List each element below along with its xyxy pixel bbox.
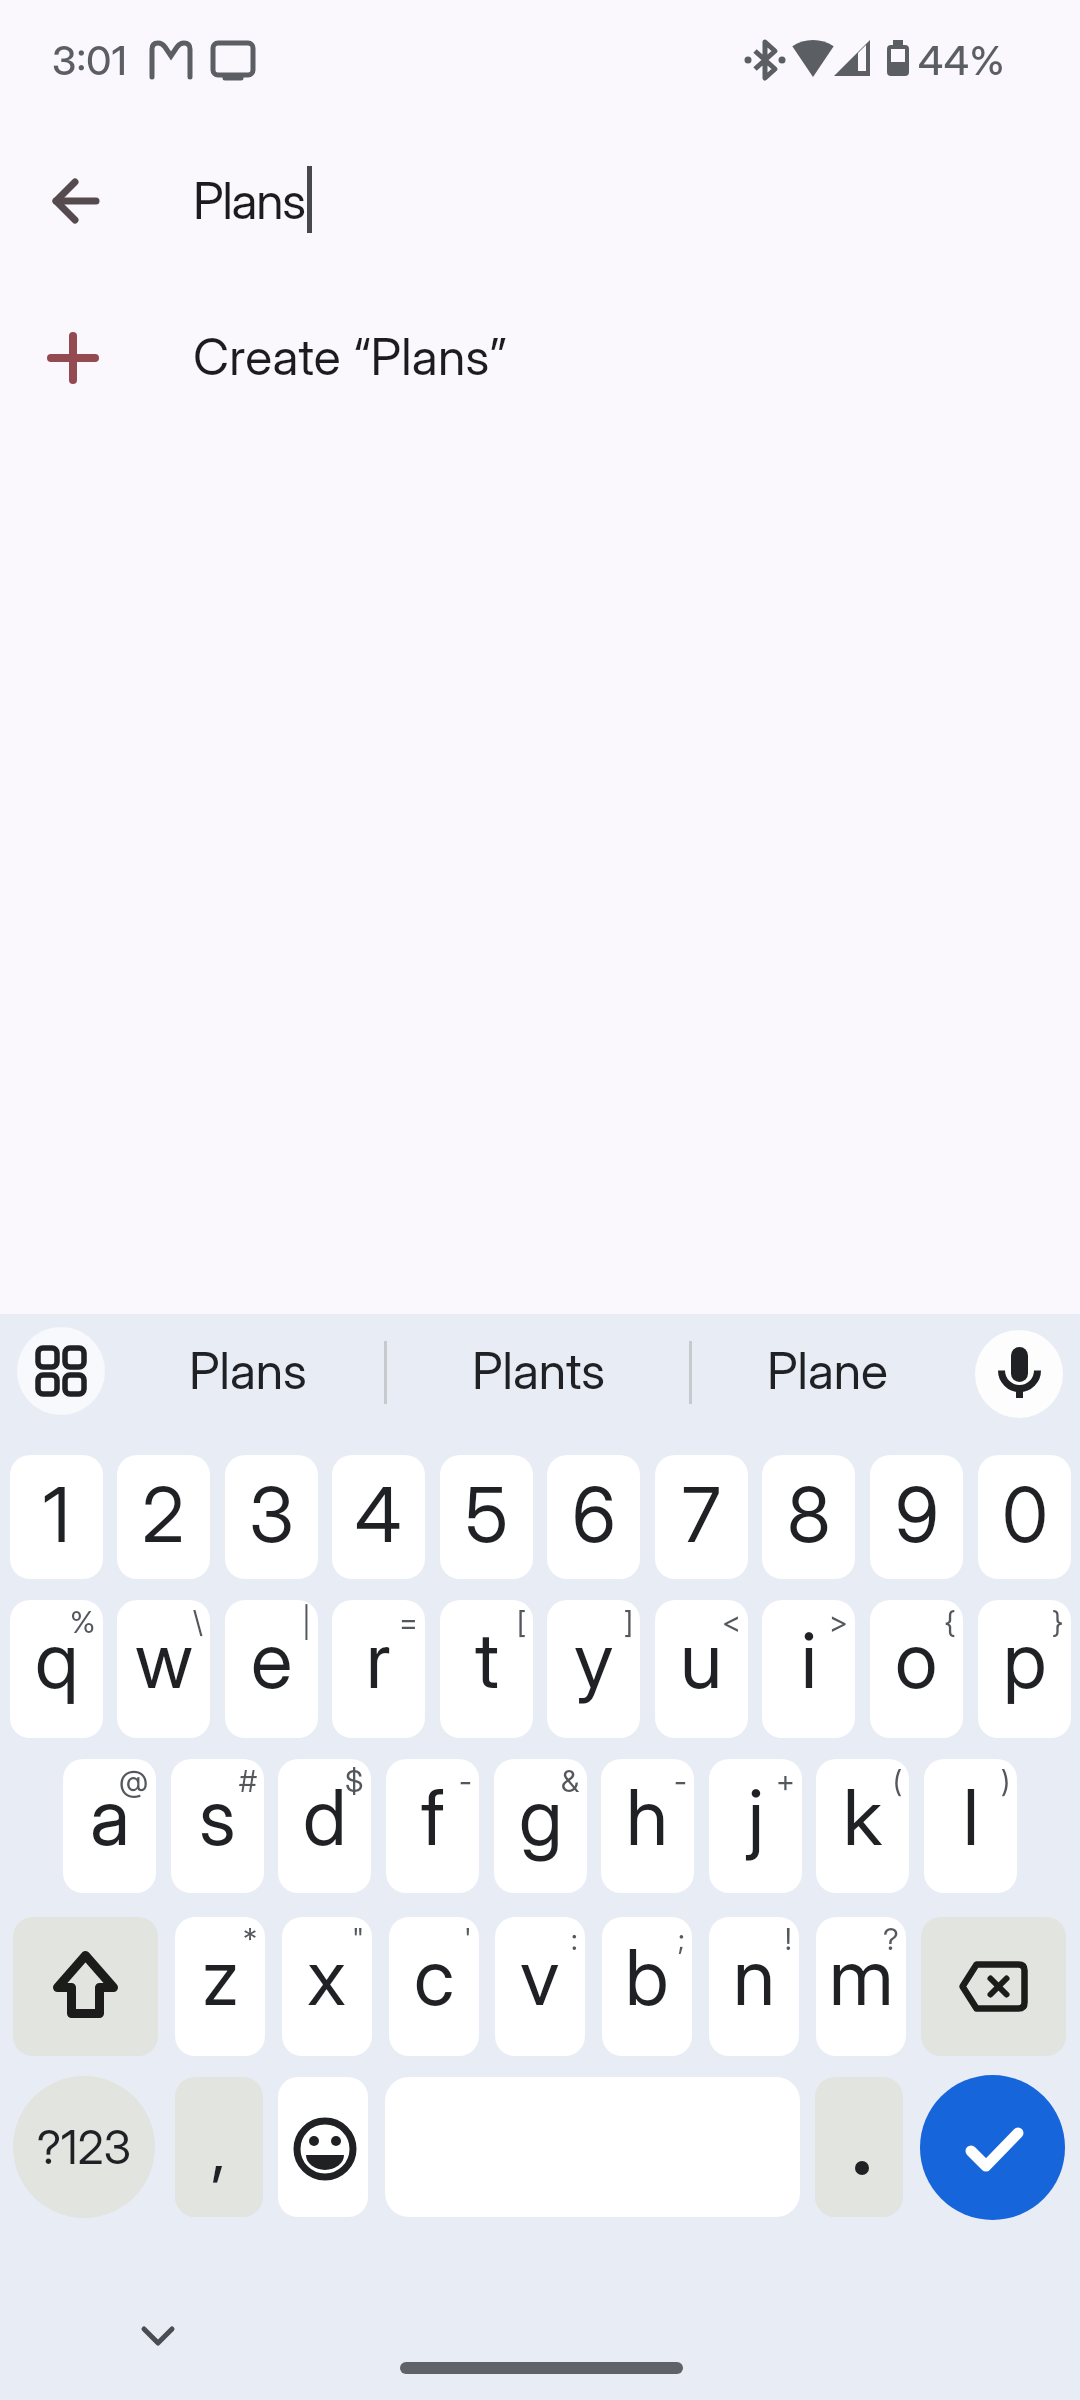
staticText: f [421, 1770, 445, 1863]
staticText: h [626, 1770, 669, 1863]
staticText: w [135, 1613, 193, 1706]
button[interactable]: 2 [117, 1455, 210, 1579]
button[interactable] [815, 2077, 903, 2217]
staticText: 2 [142, 1469, 185, 1560]
button[interactable]: y [547, 1600, 640, 1738]
button[interactable]: ?123 [13, 2076, 155, 2218]
staticText: ; [678, 1921, 685, 1957]
button[interactable]: v [495, 1917, 585, 2056]
staticText: g [519, 1770, 563, 1863]
button[interactable]: t [440, 1600, 533, 1738]
staticText: ] [624, 1604, 633, 1640]
button[interactable] [17, 1327, 105, 1415]
staticText: z [202, 1930, 239, 2023]
button[interactable]: 3 [225, 1455, 318, 1579]
button[interactable]: 0 [978, 1455, 1071, 1579]
button[interactable]: 4 [332, 1455, 425, 1579]
staticText: [ [517, 1604, 526, 1640]
button[interactable]: Plans [118, 1306, 378, 1436]
staticText: + [776, 1763, 795, 1799]
staticText: u [680, 1613, 723, 1706]
button[interactable] [920, 2075, 1065, 2220]
button[interactable]: z [175, 1917, 265, 2056]
staticText: Plans [193, 171, 305, 231]
button[interactable]: i [762, 1600, 855, 1738]
staticText: , [211, 2105, 227, 2190]
staticText: | [302, 1604, 311, 1640]
button[interactable]: a [63, 1759, 156, 1893]
staticText: ' [464, 1921, 472, 1957]
staticText: Plants [472, 1341, 605, 1401]
staticText: Plans [189, 1341, 307, 1401]
staticText: % [70, 1604, 96, 1640]
button[interactable]: u [655, 1600, 748, 1738]
button[interactable]: l [924, 1759, 1017, 1893]
button[interactable]: Plants [408, 1306, 668, 1436]
staticText: 3 [249, 1469, 294, 1560]
staticText: 4 [355, 1469, 402, 1560]
staticText: c [414, 1930, 455, 2023]
button[interactable]: Plane [697, 1306, 957, 1436]
button[interactable] [28, 154, 124, 250]
button[interactable]: q [10, 1600, 103, 1738]
button[interactable]: g [494, 1759, 587, 1893]
staticText: $ [345, 1763, 364, 1799]
staticText: m [829, 1930, 894, 2023]
button[interactable]: 5 [440, 1455, 533, 1579]
staticText: ( [893, 1763, 902, 1799]
staticText: b [625, 1930, 669, 2023]
staticText: : [571, 1921, 578, 1957]
button[interactable]: k [816, 1759, 909, 1893]
staticText: e [251, 1613, 293, 1706]
staticText: * [243, 1921, 258, 1957]
staticText: i [801, 1613, 817, 1706]
button[interactable] [921, 1917, 1066, 2056]
button[interactable]: r [332, 1600, 425, 1738]
button[interactable]: w [117, 1600, 210, 1738]
staticText: < [722, 1604, 741, 1640]
staticText: } [1052, 1604, 1064, 1640]
button[interactable]: , [175, 2077, 263, 2217]
button[interactable] [13, 1917, 158, 2056]
button[interactable]: x [282, 1917, 372, 2056]
button[interactable]: j [709, 1759, 802, 1893]
staticText: 0 [1002, 1469, 1048, 1560]
staticText: # [239, 1763, 257, 1799]
button[interactable]: o [870, 1600, 963, 1738]
staticText: & [561, 1763, 580, 1799]
button[interactable]: b [602, 1917, 692, 2056]
staticText: ? [883, 1921, 899, 1957]
button[interactable]: p [978, 1600, 1071, 1738]
button[interactable]: n [709, 1917, 799, 2056]
staticText: = [399, 1604, 418, 1640]
staticText: q [35, 1613, 79, 1706]
staticText: n [733, 1930, 776, 2023]
staticText: Plane [767, 1341, 888, 1401]
button[interactable]: c [389, 1917, 479, 2056]
button[interactable]: 8 [762, 1455, 855, 1579]
button[interactable]: 6 [547, 1455, 640, 1579]
button[interactable]: h [601, 1759, 694, 1893]
button[interactable] [0, 292, 1080, 424]
button[interactable]: e [225, 1600, 318, 1738]
button[interactable]: 9 [870, 1455, 963, 1579]
button[interactable]: 7 [655, 1455, 748, 1579]
staticText: \ [193, 1604, 203, 1640]
button[interactable] [975, 1330, 1063, 1418]
staticText: y [574, 1613, 614, 1706]
button[interactable]: m [816, 1917, 906, 2056]
staticText: 1 [43, 1469, 71, 1560]
staticText: a [90, 1770, 130, 1863]
button[interactable]: 1 [10, 1455, 103, 1579]
button[interactable]: d [278, 1759, 371, 1893]
staticText: Create “Plans” [193, 327, 507, 387]
staticText: x [307, 1930, 347, 2023]
button[interactable] [278, 2077, 368, 2217]
button[interactable]: f [386, 1759, 479, 1893]
button[interactable]: s [171, 1759, 264, 1893]
staticText: k [843, 1770, 883, 1863]
staticText: { [944, 1604, 956, 1640]
staticText: 6 [572, 1469, 616, 1560]
staticText: @ [119, 1763, 149, 1799]
